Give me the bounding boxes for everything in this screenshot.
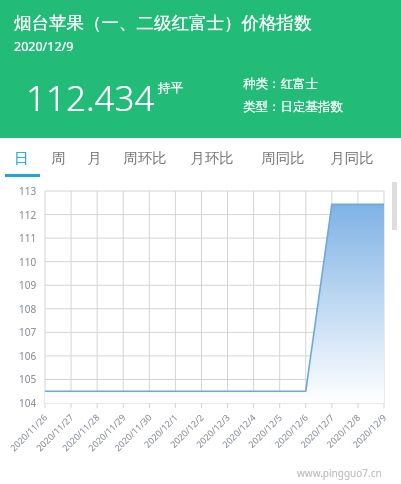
- staticText: 2020/12/9: [14, 38, 74, 55]
- button[interactable]: 周环比: [116, 138, 174, 177]
- staticText: 112.434: [26, 74, 155, 122]
- staticText: 月同比: [330, 149, 374, 167]
- button[interactable]: 月环比: [183, 138, 241, 177]
- button[interactable]: 月: [77, 138, 111, 177]
- staticText: 周同比: [261, 149, 305, 167]
- button[interactable]: 月同比: [323, 138, 381, 177]
- staticText: 月: [87, 149, 102, 167]
- staticText: 日: [14, 149, 29, 167]
- staticText: 持平: [158, 80, 183, 96]
- staticText: 月环比: [190, 149, 234, 167]
- button[interactable]: 日: [4, 138, 38, 177]
- staticText: 类型：日定基指数: [243, 99, 343, 115]
- button[interactable]: 周: [41, 138, 75, 177]
- staticText: 周环比: [123, 149, 167, 167]
- button[interactable]: 周同比: [254, 138, 312, 177]
- staticText: 烟台苹果（一、二级红富士）价格指数: [14, 12, 312, 34]
- staticText: 周: [51, 149, 66, 167]
- staticText: 种类：红富士: [243, 76, 318, 92]
